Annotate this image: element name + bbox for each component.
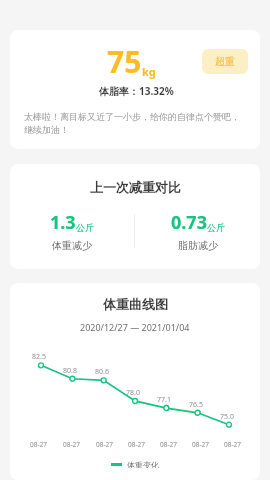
staticText: 脂肪减少 — [178, 239, 218, 252]
staticText: 体重曲线图 — [103, 296, 168, 312]
staticText: 08-27 — [30, 440, 47, 449]
staticText: 08-27 — [63, 440, 80, 449]
staticText: 公斤 — [207, 222, 225, 233]
staticText: 08-27 — [128, 440, 145, 449]
staticText: 08-27 — [224, 440, 241, 449]
button[interactable]: 75 — [10, 30, 260, 149]
staticText: 2020/12/27 — 2021/01/04 — [80, 321, 190, 333]
staticText: kg — [142, 64, 156, 79]
staticText: 体重减少 — [52, 239, 92, 252]
staticText: 超重 — [215, 55, 235, 68]
staticText: 75.0 — [220, 412, 234, 422]
staticText: 78.0 — [126, 388, 140, 398]
staticText: 75 — [107, 41, 142, 82]
staticText: 08-27 — [160, 440, 177, 449]
button[interactable]: 1.3 — [10, 210, 134, 252]
staticText: 76.5 — [189, 400, 203, 410]
staticText: 体脂率：13.32% — [99, 84, 174, 98]
button[interactable]: 超重 — [202, 49, 248, 74]
button[interactable]: 上一次减重对比 — [10, 164, 260, 269]
staticText: 08-27 — [96, 440, 113, 449]
staticText: 77.1 — [157, 395, 171, 405]
button[interactable]: 体重曲线图 — [10, 283, 260, 480]
staticText: 上一次减重对比 — [90, 179, 181, 195]
staticText: 公斤 — [76, 222, 94, 233]
staticText: 08-27 — [192, 440, 209, 449]
staticText: 82.5 — [32, 352, 46, 362]
staticText: 0.73 — [171, 210, 207, 235]
staticText: 1.3 — [50, 210, 76, 235]
staticText: 80.8 — [63, 366, 77, 376]
staticText: 体重变化 — [127, 460, 159, 468]
staticText: 太棒啦！离目标又近了一小步，给你的自律点个赞吧，继续加油！ — [24, 111, 248, 136]
button[interactable]: 0.73 — [135, 210, 260, 252]
staticText: 80.6 — [95, 367, 109, 377]
